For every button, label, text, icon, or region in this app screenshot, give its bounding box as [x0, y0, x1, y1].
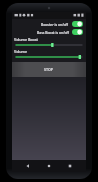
button[interactable]: Back [23, 161, 33, 171]
staticText: STOP [44, 67, 54, 72]
staticText: Bass Boost is on/off [37, 30, 69, 35]
staticText: Volume [14, 49, 28, 54]
staticText: Volume Boost [14, 37, 38, 42]
other: Booster is on/off [72, 21, 83, 27]
staticText: Booster is on/off [41, 22, 69, 27]
button[interactable]: Recents [65, 161, 75, 171]
button[interactable]: Volume Boost [14, 37, 84, 49]
button[interactable]: Home [44, 161, 54, 171]
button[interactable]: Booster is on/off [14, 20, 84, 28]
button[interactable]: Bass Boost is on/off [14, 28, 84, 36]
button[interactable]: STOP [12, 62, 86, 77]
button[interactable]: Volume [14, 49, 84, 61]
other: Bass Boost is on/off [72, 29, 83, 35]
